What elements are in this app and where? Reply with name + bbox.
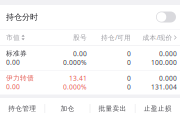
staticText: 0.000 bbox=[159, 74, 177, 82]
staticText: 市值 bbox=[6, 33, 20, 42]
staticText: 100.000 bbox=[151, 58, 177, 67]
staticText: 0.00 bbox=[73, 49, 87, 58]
button[interactable]: 成本/现价 bbox=[131, 29, 177, 45]
button[interactable]: 标准券 bbox=[0, 46, 180, 70]
staticText: 0 bbox=[127, 49, 131, 58]
staticText: 持仓分时 bbox=[6, 12, 38, 22]
staticText: 131.004 bbox=[151, 82, 177, 91]
staticText: 0.00 bbox=[6, 58, 20, 67]
staticText: 持仓/可用 bbox=[101, 33, 131, 42]
button[interactable]: 股号 bbox=[48, 29, 87, 45]
staticText: 止盈止损 bbox=[144, 104, 172, 113]
button[interactable]: Toggle intraday chart bbox=[156, 11, 176, 22]
button[interactable]: 加仓 bbox=[45, 98, 90, 119]
staticText: 持仓管理 bbox=[8, 104, 36, 113]
button[interactable]: 止盈止损 bbox=[135, 98, 180, 119]
staticText: 0.000% bbox=[63, 58, 87, 67]
staticText: 0.00 bbox=[6, 82, 20, 91]
button[interactable]: 伊力转债 bbox=[0, 70, 180, 94]
staticText: 0 bbox=[127, 58, 131, 67]
staticText: 加仓 bbox=[60, 104, 74, 113]
staticText: 成本/现价 bbox=[142, 33, 172, 42]
staticText: 0 bbox=[127, 74, 131, 82]
staticText: 13.41 bbox=[69, 74, 87, 82]
button[interactable]: 市值 bbox=[6, 29, 48, 45]
staticText: 批量卖出 bbox=[99, 104, 127, 113]
staticText: 股号 bbox=[73, 33, 87, 42]
staticText: 0.000% bbox=[63, 82, 87, 91]
button[interactable]: 批量卖出 bbox=[90, 98, 135, 119]
staticText: 标准券 bbox=[6, 49, 27, 58]
staticText: 0.000 bbox=[159, 49, 177, 58]
staticText: 0 bbox=[127, 82, 131, 91]
staticText: 伊力转债 bbox=[6, 74, 34, 82]
button[interactable]: 持仓管理 bbox=[0, 98, 45, 119]
